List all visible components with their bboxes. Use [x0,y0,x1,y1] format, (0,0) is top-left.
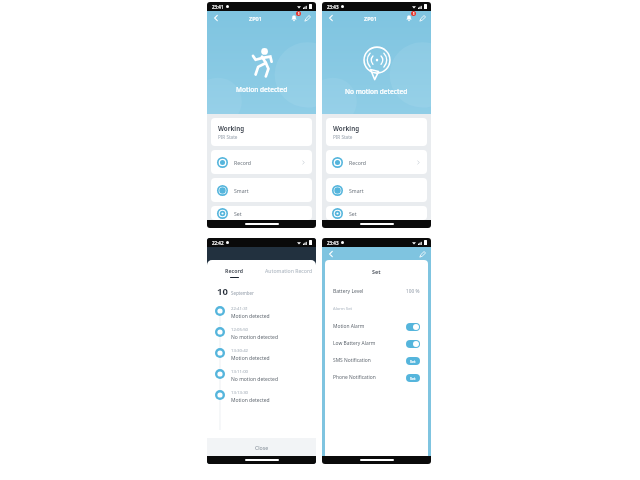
button[interactable]: Working [326,118,427,146]
staticText: PIR State [333,134,353,140]
staticText: 12:05:50 [231,326,249,332]
staticText: Set [349,210,357,217]
button[interactable]: 13:30:42 [207,346,316,367]
staticText: Record [225,267,243,274]
button[interactable]: Battery Level [325,285,428,298]
button[interactable]: Smart [326,178,427,202]
staticText: Motion detected [231,313,270,320]
button[interactable]: Working [211,118,312,146]
staticText: 23:41 [212,4,224,10]
staticText: 23:43 [327,240,339,246]
staticText: Set [410,376,416,381]
button[interactable]: Back [210,12,222,24]
staticText: 13:13:30 [231,389,249,395]
staticText: Alarm Set [333,306,353,312]
staticText: Phone Notification [333,374,376,381]
staticText: ZP01 [364,15,377,22]
staticText: Set [234,210,242,217]
button[interactable]: Back [325,12,337,24]
button[interactable]: 22:41:31 [207,304,316,325]
staticText: No motion detected [345,87,408,96]
button[interactable]: Phone Notification [325,369,428,386]
staticText: Record [234,159,252,166]
staticText: Battery Level [333,288,364,295]
staticText: 22:42 [212,240,224,246]
button[interactable]: Low Battery Alarm [325,335,428,352]
staticText: Record [349,159,367,166]
staticText: Close [255,444,269,451]
button[interactable]: Close [207,438,316,456]
button[interactable]: Notifications [403,12,415,24]
staticText: No motion detected [231,376,278,383]
staticText: 13:30:42 [231,347,249,353]
staticText: Motion detected [236,85,288,94]
staticText: ZP01 [249,15,262,22]
button[interactable]: Automation Record [261,267,316,274]
staticText: Set [372,268,381,275]
button[interactable]: Back [325,248,337,260]
button[interactable]: Record [207,267,261,278]
button[interactable]: Record [211,150,312,174]
button[interactable]: Edit [416,12,428,24]
staticText: Automation Record [265,267,313,274]
button[interactable]: Notifications [288,12,300,24]
button[interactable]: Motion Alarm [325,318,428,335]
staticText: Working [333,124,360,132]
staticText: 22:41:31 [231,305,249,311]
staticText: 23:43 [327,4,339,10]
staticText: SMS Notification [333,357,371,364]
staticText: Low Battery Alarm [333,340,376,347]
staticText: Smart [234,187,249,194]
staticText: Working [218,124,245,132]
staticText: September [231,290,254,296]
button[interactable]: Set [326,206,427,220]
button[interactable]: SMS Notification [325,352,428,369]
button[interactable]: Record [326,150,427,174]
staticText: 10 [217,285,228,298]
button[interactable]: Smart [211,178,312,202]
button[interactable]: Edit [301,12,313,24]
staticText: 100 % [406,288,420,295]
staticText: 1 [298,12,300,16]
button[interactable]: Set [211,206,312,220]
button[interactable]: 13:11:00 [207,367,316,388]
button[interactable]: 13:13:30 [207,388,316,409]
staticText: Motion Alarm [333,323,365,330]
staticText: PIR State [218,134,238,140]
button[interactable]: Edit [416,248,428,260]
staticText: 1 [413,12,415,16]
staticText: 13:11:00 [231,368,249,374]
staticText: Motion detected [231,355,270,362]
staticText: No motion detected [231,334,278,341]
staticText: Smart [349,187,364,194]
staticText: Motion detected [231,397,270,404]
staticText: Set [410,359,416,364]
button[interactable]: 12:05:50 [207,325,316,346]
